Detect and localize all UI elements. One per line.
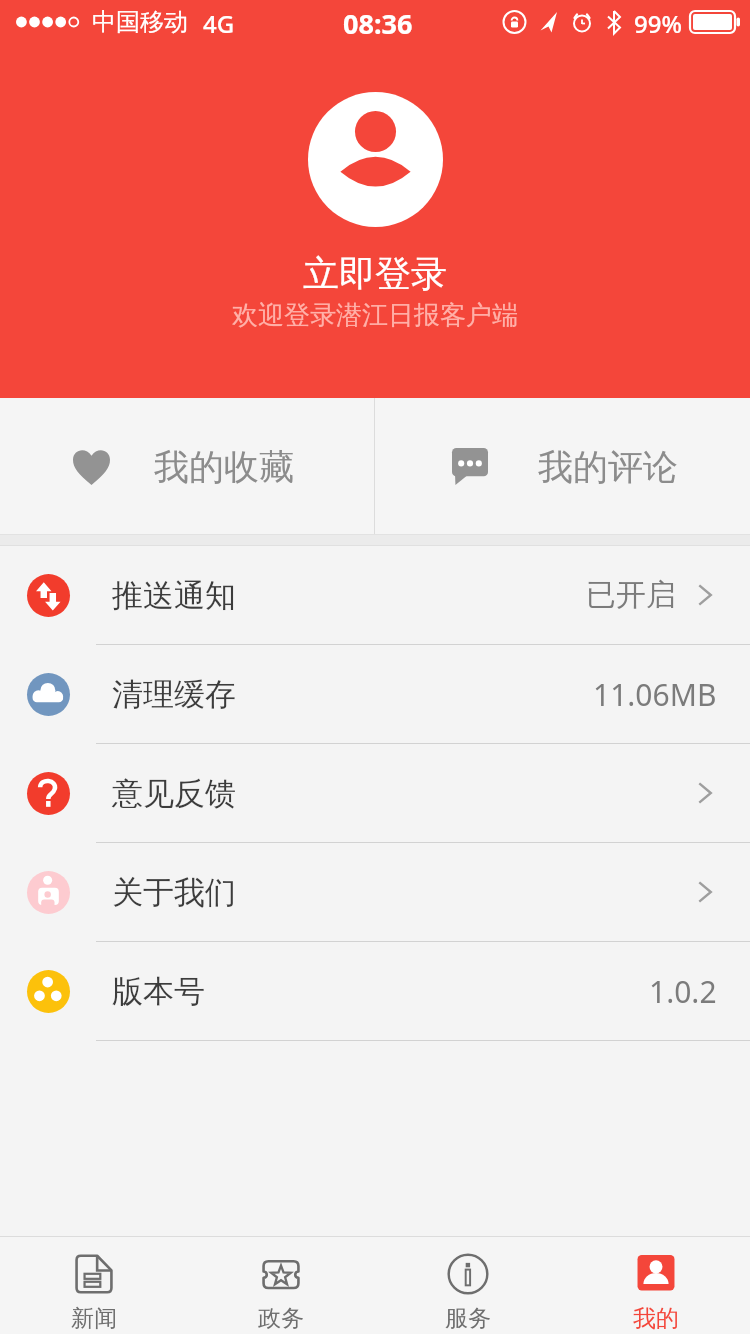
staticText: 政务 — [258, 1304, 304, 1333]
button[interactable]: 政务 — [187, 1237, 374, 1334]
button[interactable]: 服务 — [374, 1237, 562, 1334]
staticText: 4G — [203, 7, 235, 40]
staticText: 1.0.2 — [649, 971, 717, 1012]
staticText: 已开启 — [586, 576, 676, 614]
button[interactable]: 新闻 — [0, 1237, 187, 1334]
staticText: 我的 — [633, 1304, 679, 1333]
staticText: 立即登录 — [303, 251, 447, 296]
staticText: 清理缓存 — [112, 675, 236, 714]
staticText: 服务 — [445, 1304, 491, 1333]
button[interactable]: 版本号 — [0, 942, 750, 1040]
staticText: 08:36 — [343, 5, 413, 42]
button[interactable]: 意见反馈 — [0, 744, 750, 842]
staticText: 新闻 — [71, 1304, 117, 1333]
staticText: 我的评论 — [538, 445, 678, 489]
button[interactable]: 我的评论 — [379, 398, 750, 535]
staticText: 意见反馈 — [112, 774, 236, 813]
staticText: 99% — [634, 7, 682, 40]
staticText: 我的收藏 — [154, 445, 294, 489]
staticText: 推送通知 — [112, 576, 236, 615]
staticText: 中国移动 — [92, 7, 188, 37]
button[interactable]: 关于我们 — [0, 843, 750, 941]
staticText: 欢迎登录潜江日报客户端 — [232, 299, 518, 332]
button[interactable]: 我的 — [562, 1237, 750, 1334]
staticText: 11.06MB — [593, 674, 717, 715]
button[interactable]: 我的收藏 — [0, 398, 367, 535]
button[interactable]: 推送通知 — [0, 546, 750, 644]
staticText: 版本号 — [112, 972, 205, 1011]
button[interactable]: Login avatar — [308, 92, 443, 227]
button[interactable]: 清理缓存 — [0, 645, 750, 743]
staticText: 关于我们 — [112, 873, 236, 912]
